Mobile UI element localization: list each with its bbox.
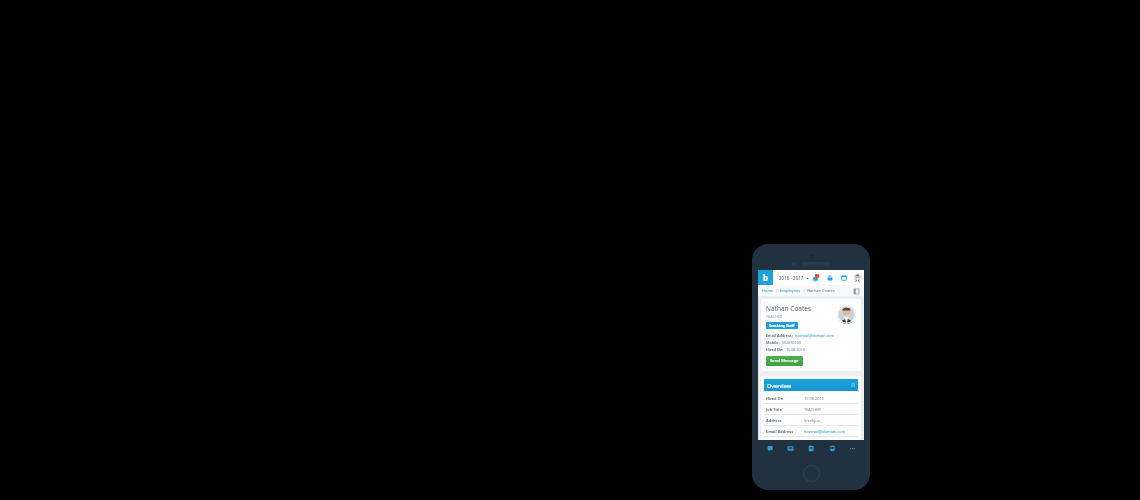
button[interactable]: Send Message — [766, 356, 803, 366]
button[interactable]: 2016 - 2017 — [779, 275, 809, 281]
staticText: Mobile: — [766, 340, 780, 345]
button[interactable]: Documents — [802, 440, 820, 456]
button[interactable]: Overview — [764, 379, 858, 391]
button[interactable]: Lock — [824, 272, 835, 283]
staticText: 15.08.2015 — [804, 396, 824, 401]
button[interactable]: Notifications — [809, 272, 821, 284]
staticText: / — [803, 288, 805, 293]
staticText: noemail@domain.com — [804, 429, 846, 434]
staticText: Sreekjun,, — [804, 418, 823, 423]
button[interactable]: Calendar — [838, 272, 849, 283]
staticText: TEACHER — [766, 314, 783, 319]
button[interactable]: More — [843, 440, 861, 456]
staticText: Address — [766, 418, 782, 423]
staticText: / — [776, 288, 778, 293]
button[interactable]: Dashboard — [781, 440, 799, 456]
staticText: 2016 - 2017 — [779, 275, 804, 281]
button[interactable]: Email Address — [764, 426, 858, 436]
staticText: Teaching Staff — [769, 323, 795, 328]
staticText: TEACHER — [804, 407, 821, 412]
staticText: Home — [762, 288, 774, 293]
staticText: Email Address: — [766, 333, 793, 338]
button[interactable]: Brand home — [758, 270, 773, 285]
button[interactable]: Job Title — [764, 404, 858, 414]
staticText: Email Address — [766, 429, 794, 434]
staticText: Job Title — [766, 407, 782, 412]
button[interactable]: Hired On — [764, 393, 858, 403]
staticText: 552650103 — [782, 340, 801, 345]
button[interactable]: Collapse panel — [851, 286, 861, 296]
button[interactable]: Reports — [823, 440, 841, 456]
staticText: b — [763, 272, 769, 283]
staticText: noemail@domain.com — [795, 333, 834, 338]
button[interactable]: Messages — [761, 440, 779, 456]
staticText: Overview — [767, 382, 791, 389]
staticText: Hired On: — [766, 347, 784, 352]
button[interactable]: Employees — [780, 288, 801, 293]
staticText: Send Message — [770, 358, 799, 364]
button[interactable]: Home — [762, 288, 774, 293]
button[interactable]: Account — [852, 272, 863, 283]
staticText: Hired On — [766, 396, 784, 401]
staticText: 15.08.2015 — [786, 347, 805, 352]
button[interactable]: Teaching Staff — [766, 322, 798, 329]
staticText: Nathan Coates — [807, 288, 835, 293]
staticText: Employees — [780, 288, 801, 293]
button[interactable]: Address — [764, 415, 858, 425]
staticText: Nathan Coates — [766, 304, 812, 313]
